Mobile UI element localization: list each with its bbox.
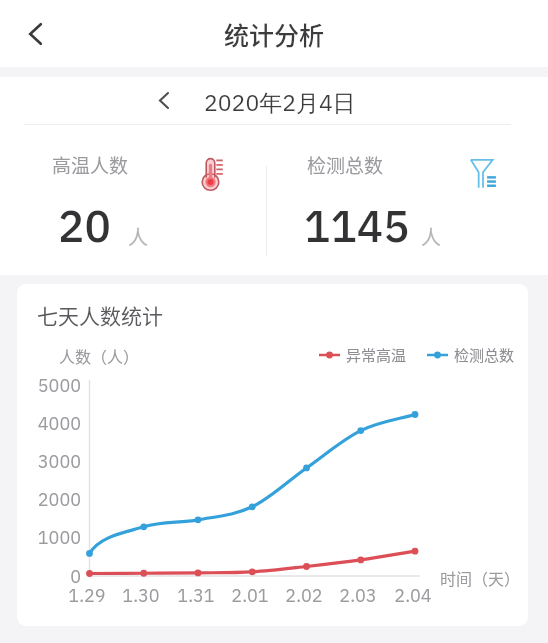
staticText: 高温人数	[52, 151, 129, 179]
staticText: 1000	[17, 526, 81, 549]
staticText: 5000	[17, 374, 81, 397]
staticText: 2000	[17, 488, 81, 511]
staticText: 1145	[304, 197, 410, 254]
button[interactable]: 检测总数	[273, 123, 548, 275]
staticText: 2.04	[383, 584, 443, 607]
button[interactable]: 异常高温	[319, 344, 407, 366]
staticText: 1.30	[111, 584, 171, 607]
staticText: 统计分析	[224, 16, 325, 52]
staticText: 2.02	[274, 584, 334, 607]
button[interactable]: 2020年2月4日	[204, 87, 356, 117]
staticText: 七天人数统计	[37, 300, 163, 330]
button[interactable]: Back	[12, 10, 59, 57]
staticText: 3000	[17, 450, 81, 473]
staticText: 人	[421, 222, 441, 251]
staticText: 异常高温	[346, 344, 407, 366]
staticText: 检测总数	[307, 151, 384, 179]
button[interactable]: 高温人数	[0, 123, 273, 275]
staticText: 1.29	[57, 584, 117, 607]
staticText: 2.01	[220, 584, 280, 607]
staticText: 0	[17, 565, 81, 588]
staticText: 人数（人）	[59, 344, 140, 367]
staticText: 时间（天）	[440, 566, 521, 589]
staticText: 检测总数	[454, 344, 515, 366]
staticText: 2.03	[328, 584, 388, 607]
staticText: 4000	[17, 412, 81, 435]
button[interactable]: Previous day	[143, 83, 185, 117]
staticText: 1.31	[166, 584, 226, 607]
staticText: 人	[128, 222, 148, 251]
staticText: 20	[58, 197, 111, 254]
button[interactable]: 检测总数	[427, 344, 515, 366]
